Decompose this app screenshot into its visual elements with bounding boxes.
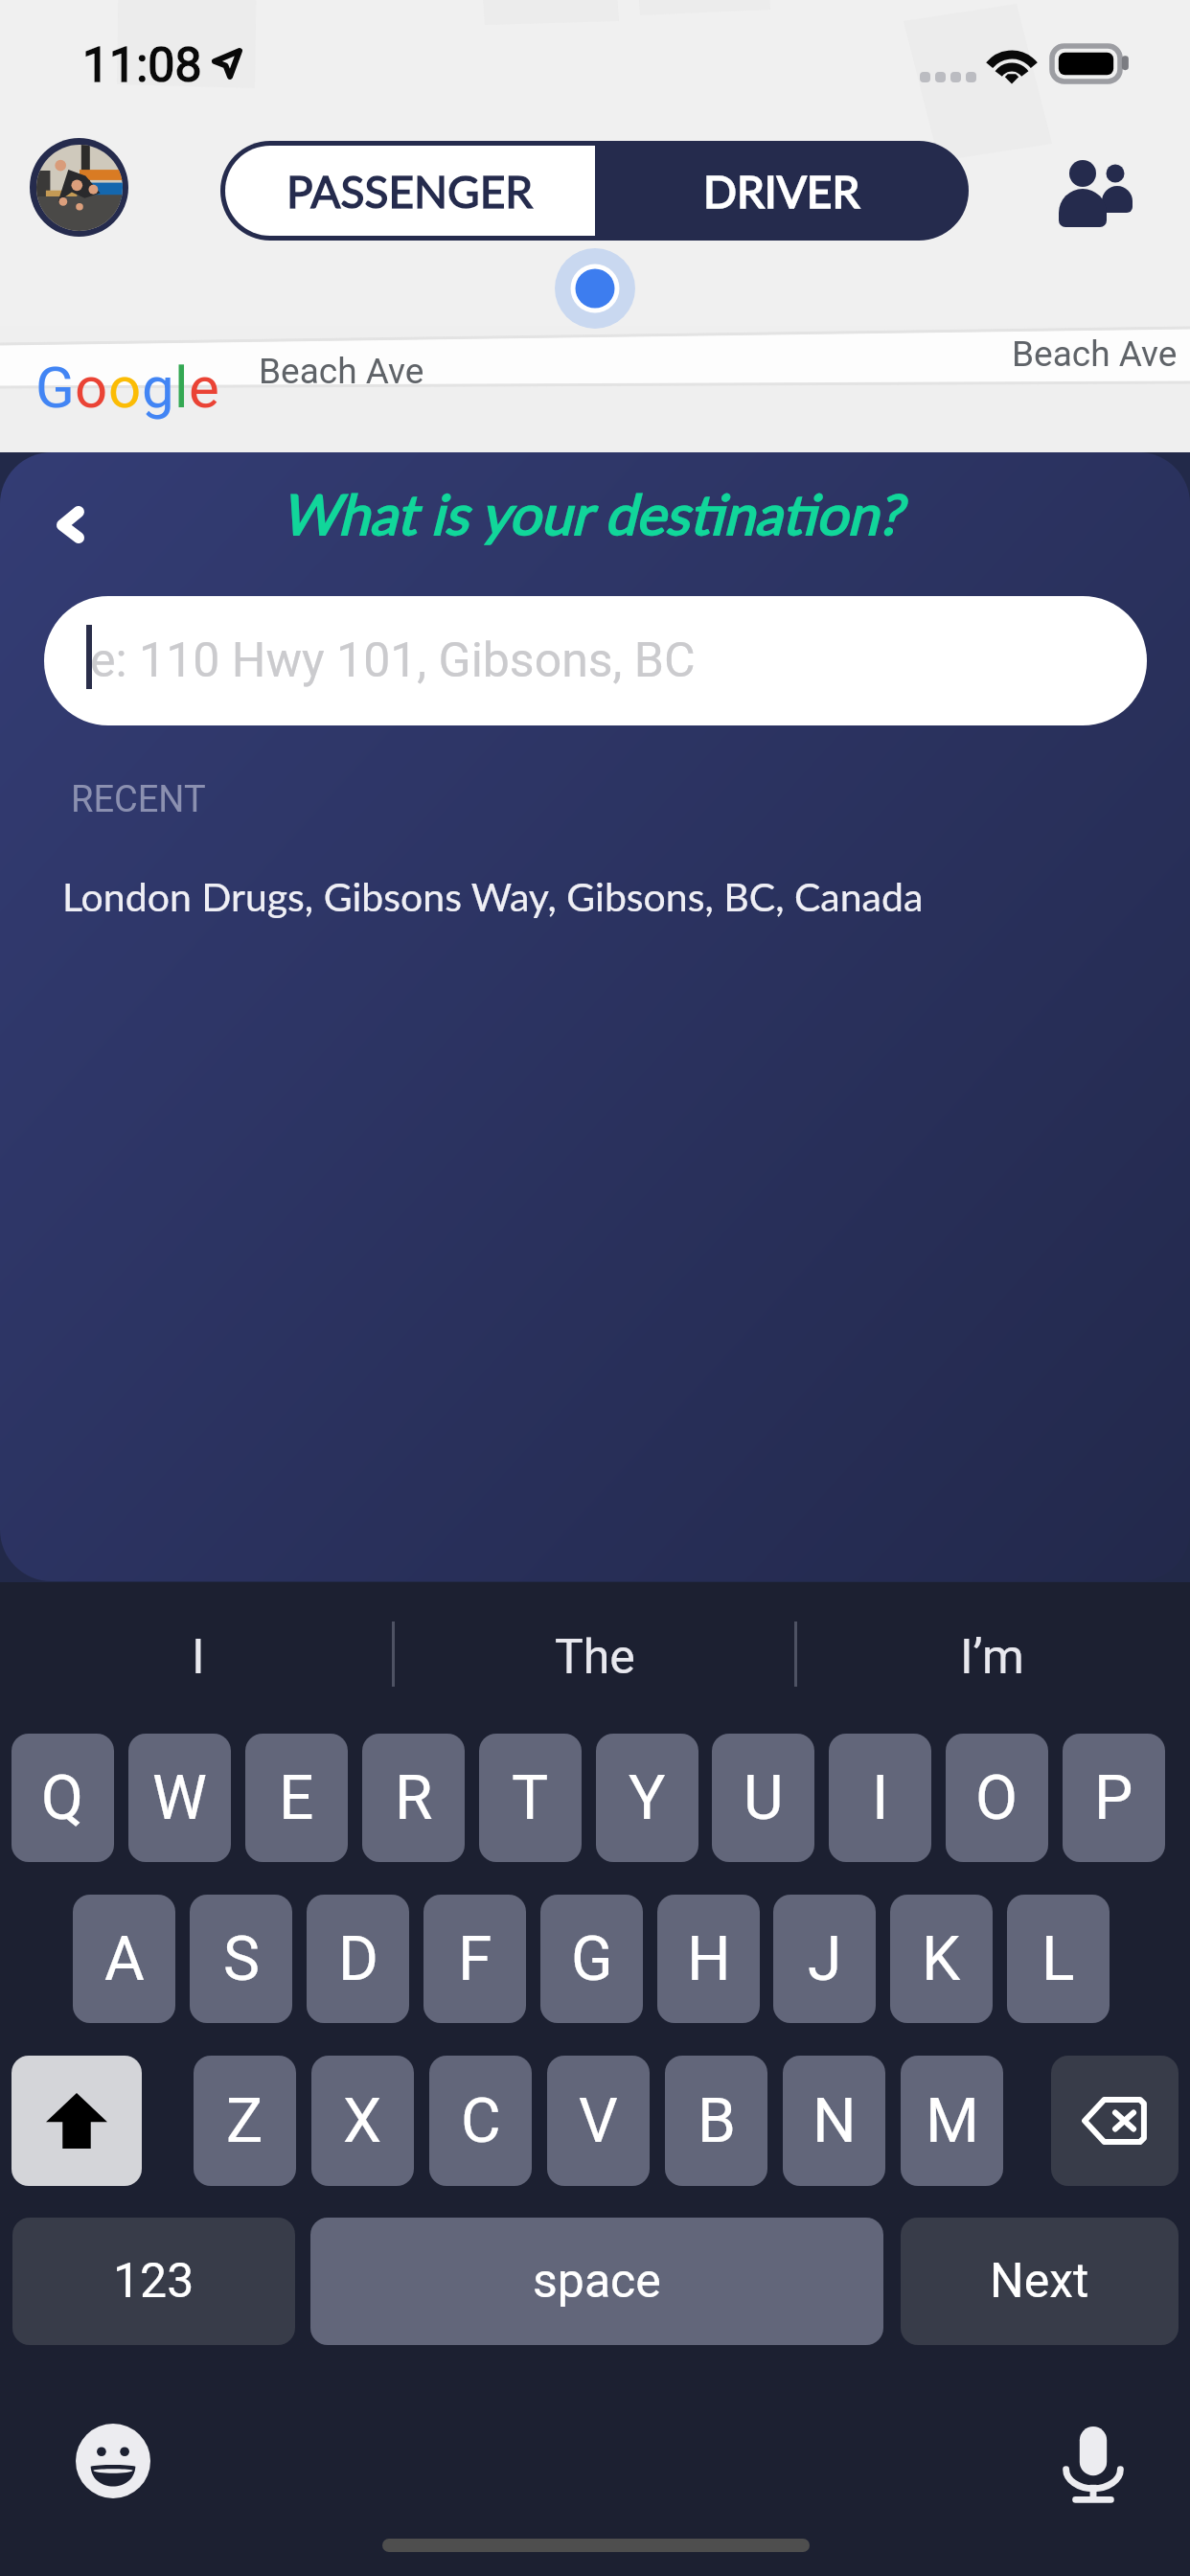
button[interactable]: T	[479, 1734, 582, 1862]
button[interactable]: space	[310, 2218, 883, 2345]
button[interactable]: 123	[12, 2218, 295, 2345]
staticText: G	[35, 354, 75, 421]
button[interactable]: DRIVER	[595, 141, 969, 241]
staticText: P	[1094, 1762, 1133, 1834]
button[interactable]: O	[946, 1734, 1048, 1862]
staticText: DRIVER	[703, 165, 860, 218]
button[interactable]: S	[190, 1895, 292, 2023]
staticText: Next	[990, 2253, 1089, 2310]
staticText: M	[926, 2085, 979, 2157]
button[interactable]: K	[890, 1895, 993, 2023]
button[interactable]: I	[829, 1734, 931, 1862]
button[interactable]: U	[712, 1734, 814, 1862]
staticText: F	[458, 1923, 492, 1995]
button[interactable]: Next	[901, 2218, 1179, 2345]
staticText: H	[687, 1923, 731, 1995]
staticText: Beach Ave	[1012, 333, 1178, 375]
button[interactable]: I	[0, 1582, 397, 1732]
button[interactable]: Y	[596, 1734, 698, 1862]
staticText: Beach Ave	[259, 351, 424, 392]
staticText: Z	[226, 2085, 263, 2157]
staticText: E	[279, 1762, 314, 1834]
button[interactable]: Contacts	[1038, 144, 1153, 243]
button[interactable]: I’m	[793, 1582, 1190, 1732]
staticText: G	[571, 1923, 613, 1995]
staticText: o	[108, 354, 142, 421]
button[interactable]: London Drugs, Gibsons Way, Gibsons, BC, …	[0, 862, 1190, 931]
button[interactable]: Profile	[30, 138, 128, 237]
button[interactable]: G	[540, 1895, 643, 2023]
staticText: V	[579, 2085, 618, 2157]
button[interactable]: C	[429, 2056, 532, 2186]
staticText: What is your destination?	[281, 480, 903, 547]
staticText: J	[808, 1923, 842, 1995]
staticText: Q	[41, 1762, 84, 1834]
staticText: U	[744, 1762, 784, 1834]
button[interactable]: Back	[25, 480, 103, 559]
button[interactable]: Q	[11, 1734, 114, 1862]
staticText: I’m	[960, 1629, 1024, 1686]
staticText: space	[533, 2253, 661, 2310]
staticText: o	[75, 354, 108, 421]
staticText: A	[104, 1923, 145, 1995]
staticText: T	[512, 1762, 549, 1834]
staticText: I	[192, 1629, 205, 1686]
staticText: C	[461, 2085, 501, 2157]
staticText: e: 110 Hwy 101, Gibsons, BC	[90, 632, 696, 689]
staticText: S	[223, 1923, 260, 1995]
staticText: Y	[629, 1762, 666, 1834]
staticText: W	[152, 1762, 207, 1834]
button[interactable]: B	[665, 2056, 767, 2186]
button[interactable]: J	[773, 1895, 876, 2023]
button[interactable]: X	[311, 2056, 414, 2186]
staticText: I	[872, 1762, 889, 1834]
button[interactable]: Shift	[11, 2056, 142, 2186]
button[interactable]: A	[73, 1895, 175, 2023]
button[interactable]: Voice input	[1062, 2426, 1125, 2503]
button[interactable]: E	[245, 1734, 348, 1862]
staticText: 11:08	[82, 37, 202, 94]
staticText: RECENT	[71, 778, 206, 821]
staticText: D	[338, 1923, 378, 1995]
staticText: R	[395, 1762, 433, 1834]
button[interactable]: W	[128, 1734, 231, 1862]
button[interactable]: R	[362, 1734, 465, 1862]
staticText: L	[1041, 1923, 1075, 1995]
button[interactable]: D	[307, 1895, 409, 2023]
button[interactable]: V	[547, 2056, 650, 2186]
button[interactable]: Z	[194, 2056, 296, 2186]
staticText: e	[189, 354, 219, 421]
button[interactable]: H	[657, 1895, 760, 2023]
staticText: X	[343, 2085, 382, 2157]
staticText: PASSENGER	[286, 165, 534, 218]
staticText: 123	[113, 2253, 195, 2310]
button[interactable]: Emoji	[76, 2424, 150, 2498]
button[interactable]: M	[901, 2056, 1003, 2186]
staticText: O	[975, 1762, 1018, 1834]
staticText: The	[555, 1629, 635, 1686]
staticText: London Drugs, Gibsons Way, Gibsons, BC, …	[62, 873, 924, 920]
button[interactable]: P	[1063, 1734, 1165, 1862]
staticText: g	[142, 354, 174, 421]
button[interactable]: F	[423, 1895, 526, 2023]
button[interactable]: PASSENGER	[225, 146, 595, 236]
staticText: B	[698, 2085, 736, 2157]
button[interactable]: Backspace	[1051, 2056, 1179, 2186]
staticText: K	[922, 1923, 961, 1995]
button[interactable]: e: 110 Hwy 101, Gibsons, BC	[44, 596, 1147, 725]
button[interactable]: The	[397, 1582, 793, 1732]
button[interactable]: L	[1007, 1895, 1110, 2023]
staticText: l	[174, 354, 189, 421]
staticText: N	[812, 2085, 857, 2157]
button[interactable]: N	[783, 2056, 885, 2186]
